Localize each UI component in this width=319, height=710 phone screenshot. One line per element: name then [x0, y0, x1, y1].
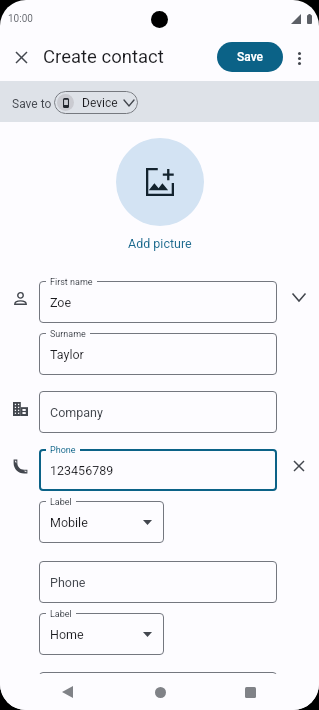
staticText: Zoe — [50, 295, 72, 310]
button[interactable] — [39, 672, 277, 710]
staticText: Save — [237, 50, 263, 64]
button[interactable]: More options — [288, 47, 310, 69]
button[interactable]: Home — [148, 680, 172, 704]
button[interactable]: Recents — [238, 680, 262, 704]
button[interactable] — [39, 333, 277, 375]
button[interactable]: Back — [55, 680, 79, 704]
staticText: Save to — [12, 97, 52, 111]
staticText: First name — [50, 277, 93, 288]
button[interactable] — [39, 449, 277, 491]
staticText: Phone — [50, 575, 86, 590]
button[interactable] — [39, 391, 277, 433]
button[interactable]: Expand name fields — [286, 285, 311, 310]
button[interactable]: Close — [8, 44, 34, 70]
button[interactable]: Clear phone number — [286, 453, 311, 478]
staticText: Device — [82, 96, 118, 110]
button[interactable] — [39, 613, 164, 655]
staticText: Create contact — [43, 46, 164, 68]
staticText: 123456789 — [50, 463, 114, 478]
staticText: Home — [50, 627, 84, 642]
button[interactable]: Add picture — [128, 236, 192, 251]
staticText: 10:00 — [8, 13, 33, 25]
button[interactable]: Device — [54, 91, 138, 114]
button[interactable] — [39, 501, 164, 543]
staticText: Label — [50, 609, 72, 620]
button[interactable]: Add picture — [116, 138, 204, 226]
staticText: Taylor — [50, 347, 84, 362]
button[interactable] — [39, 281, 277, 323]
staticText: Company — [50, 405, 103, 420]
button[interactable] — [39, 561, 277, 603]
staticText: Label — [50, 497, 72, 508]
staticText: Mobile — [50, 515, 88, 530]
button[interactable]: Save — [217, 42, 283, 72]
staticText: Phone — [50, 445, 76, 456]
staticText: Surname — [50, 329, 86, 340]
